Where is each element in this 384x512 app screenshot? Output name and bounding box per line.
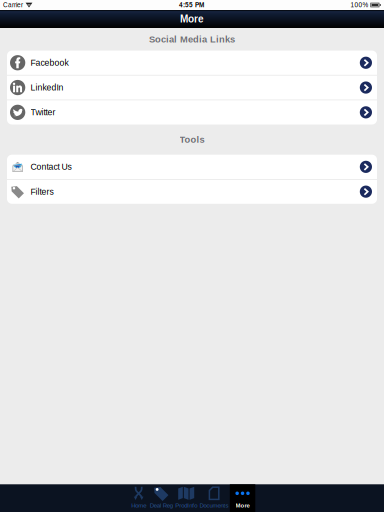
staticText: 4:55 PM [179,1,204,8]
button[interactable]: Facebook [7,51,377,75]
staticText: Contact Us [30,162,71,172]
button[interactable]: Contact Us [7,155,377,179]
button[interactable]: LinkedIn [7,75,377,100]
staticText: Facebook [30,58,68,68]
staticText: Documents [200,502,229,509]
staticText: Tools [179,134,204,145]
button[interactable]: Documents [198,484,230,512]
staticText: Twitter [30,107,55,117]
staticText: Carrier [3,1,23,8]
button[interactable]: Twitter [7,100,377,124]
staticText: Home [131,502,146,509]
button[interactable]: More [230,484,255,512]
staticText: More [180,13,204,25]
staticText: Deal Reg [150,502,173,509]
button[interactable]: Deal Reg [149,484,174,512]
staticText: Filters [30,187,53,196]
button[interactable]: Filters [7,179,377,204]
staticText: Social Media Links [149,34,235,44]
button[interactable]: Home [129,484,149,512]
staticText: LinkedIn [30,83,63,92]
staticText: 100% [350,1,368,8]
staticText: More [236,502,250,509]
staticText: ProdInfo [175,502,197,509]
button[interactable]: ProdInfo [174,484,198,512]
